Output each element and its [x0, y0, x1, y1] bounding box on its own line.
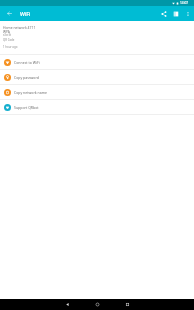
button[interactable]: Share [158, 8, 170, 20]
button[interactable]: Back [4, 8, 15, 19]
button[interactable]: History [170, 8, 182, 20]
staticText: Home network 4711 [3, 25, 36, 30]
button[interactable]: More options [182, 8, 194, 20]
button[interactable]: Copy password [0, 70, 194, 84]
button[interactable]: Copy network name [0, 85, 194, 99]
staticText: Copy network name [14, 90, 47, 95]
staticText: QR Code [3, 38, 15, 42]
staticText: Copy password [14, 75, 39, 80]
staticText: WiFi [20, 10, 31, 17]
staticText: Support QRbot [14, 105, 39, 110]
button[interactable]: Support QRbot [0, 100, 194, 114]
staticText: 1 hour ago [3, 45, 18, 49]
staticText: s3cr3t [3, 33, 12, 37]
button[interactable]: Recents [122, 299, 133, 310]
staticText: Connect to WiFi [14, 60, 40, 65]
button[interactable]: Home [92, 299, 103, 310]
button[interactable]: Connect to WiFi [0, 55, 194, 69]
staticText: 14:07 [180, 1, 189, 5]
button[interactable]: Back [62, 299, 73, 310]
staticText: WPA [3, 30, 10, 34]
